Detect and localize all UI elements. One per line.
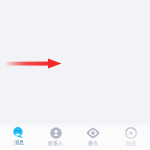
button[interactable]: Moments [112,127,150,150]
staticText: 看点 [88,140,98,146]
button[interactable]: Watch [74,127,112,150]
button[interactable]: Contacts [37,127,74,150]
staticText: 动态 [126,140,136,146]
staticText: 联系人 [48,140,63,146]
button[interactable]: Messages [0,127,37,150]
staticText: 消息 [14,139,24,145]
